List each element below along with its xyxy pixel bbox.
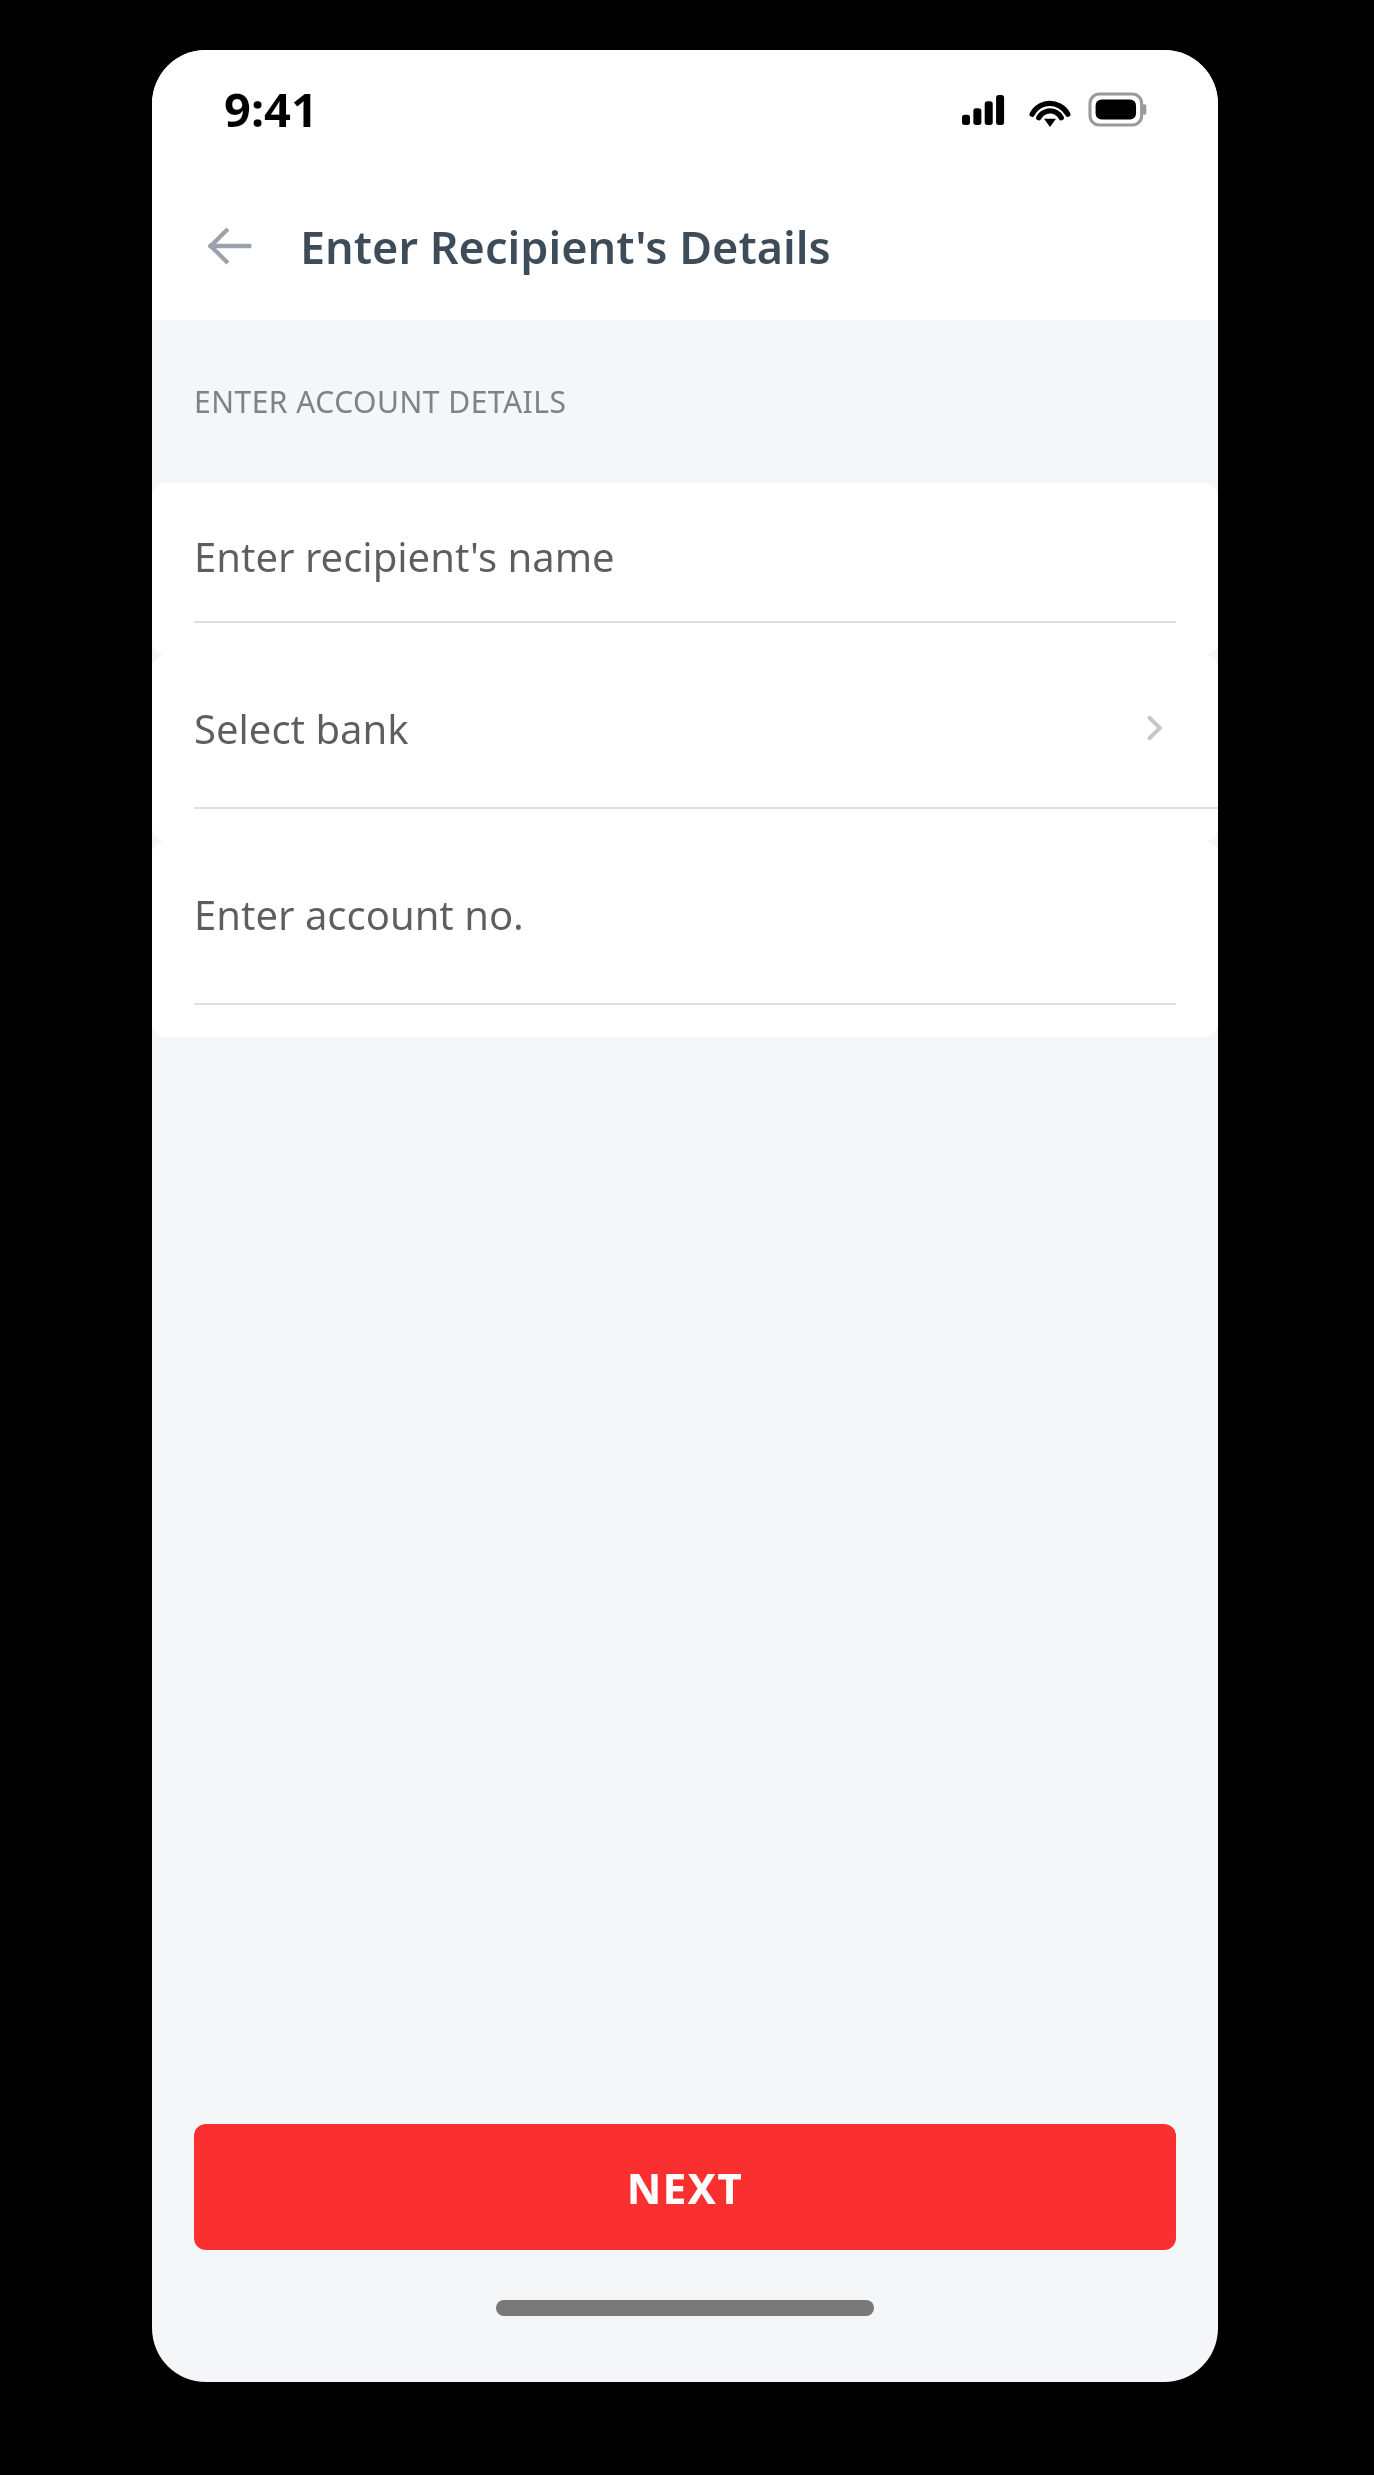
staticText: 9:41	[224, 77, 318, 141]
staticText: ENTER ACCOUNT DETAILS	[194, 381, 567, 422]
button[interactable]: Enter account no.	[152, 841, 1218, 1037]
button[interactable]: Enter recipient's name	[152, 483, 1218, 655]
staticText: Enter recipient's name	[194, 529, 615, 583]
button[interactable]: Back	[188, 204, 272, 288]
staticText: Enter Recipient's Details	[300, 216, 831, 277]
staticText: Select bank	[194, 701, 409, 755]
staticText: Enter account no.	[194, 887, 524, 941]
staticText: NEXT	[627, 2159, 744, 2216]
button[interactable]: Select bank	[1132, 706, 1176, 750]
button[interactable]: Select bank	[152, 655, 1218, 841]
button[interactable]: NEXT	[194, 2124, 1176, 2250]
